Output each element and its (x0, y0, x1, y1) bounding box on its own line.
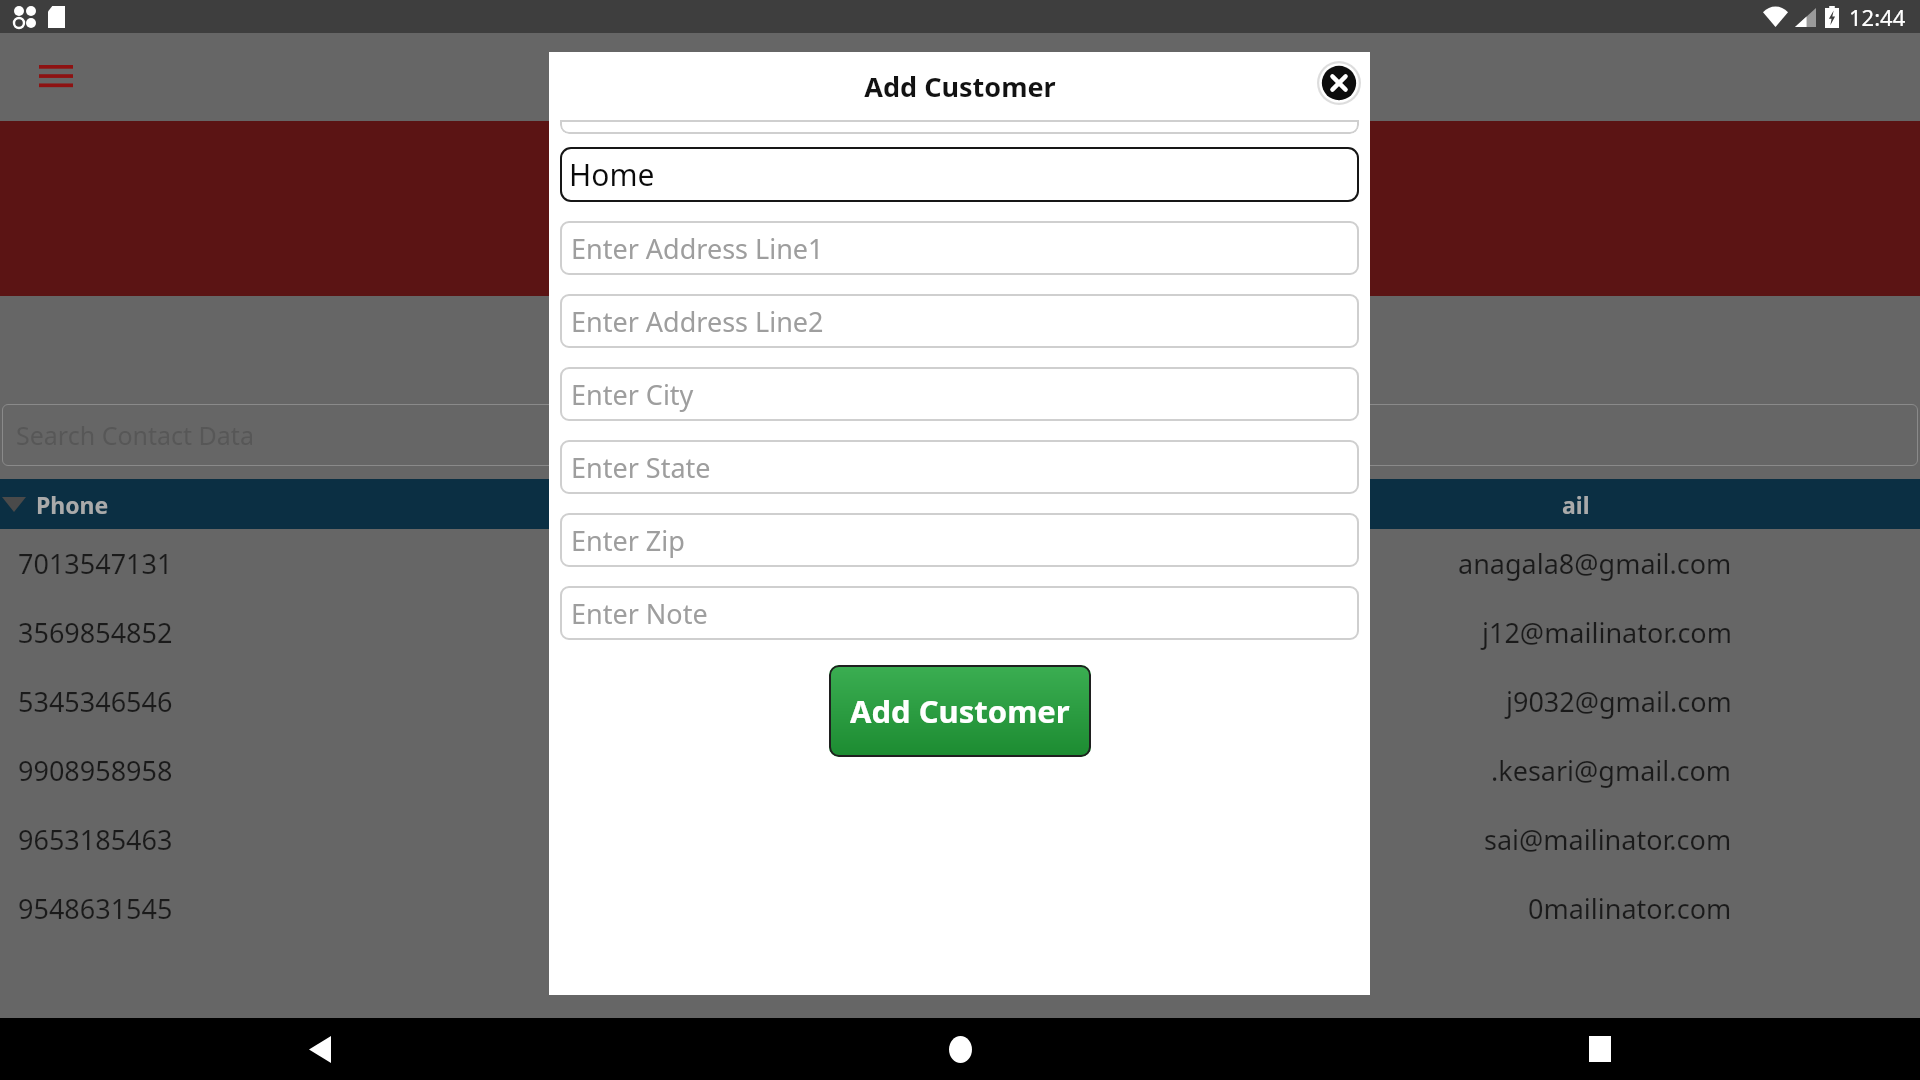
staticText: j12@mailinator.com (1482, 614, 1732, 651)
staticText: Home (569, 154, 655, 195)
staticText: 5345346546 (18, 683, 173, 720)
staticText: 0mailinator.com (1528, 890, 1732, 927)
staticText: Add Customer (850, 690, 1070, 732)
button[interactable]: Enter State (560, 440, 1359, 494)
button[interactable]: Menu (30, 51, 82, 103)
button[interactable]: Add Customer (829, 665, 1091, 757)
staticText: 3569854852 (18, 614, 173, 651)
staticText: Add Customer (864, 68, 1056, 105)
staticText: .kesari@gmail.com (1491, 752, 1732, 789)
staticText: 12:44 (1849, 2, 1906, 32)
staticText: Enter City (571, 376, 694, 413)
button[interactable]: Enter City (560, 367, 1359, 421)
button[interactable]: 9548631545 (0, 874, 1920, 943)
button[interactable]: Enter Zip (560, 513, 1359, 567)
staticText: 9548631545 (18, 890, 173, 927)
button[interactable]: 7013547131 (0, 529, 1920, 598)
staticText: ail (1562, 489, 1590, 520)
button[interactable]: 5345346546 (0, 667, 1920, 736)
staticText: 9908958958 (18, 752, 173, 789)
staticText: Enter Zip (571, 522, 685, 559)
button[interactable]: Enter Note (560, 586, 1359, 640)
button[interactable]: Enter Address Line1 (560, 221, 1359, 275)
staticText: anagala8@gmail.com (1458, 545, 1732, 582)
staticText: sai@mailinator.com (1484, 821, 1732, 858)
button[interactable]: 9908958958 (0, 736, 1920, 805)
button[interactable]: 9653185463 (0, 805, 1920, 874)
staticText: Enter State (571, 449, 711, 486)
staticText: Enter Address Line2 (571, 303, 824, 340)
button[interactable]: 3569854852 (0, 598, 1920, 667)
button[interactable]: Recent apps (1280, 1018, 1920, 1080)
button[interactable]: Back (0, 1018, 640, 1080)
staticText: Phone (36, 489, 109, 520)
button[interactable]: Search Contact Data (2, 404, 1918, 466)
staticText: 9653185463 (18, 821, 173, 858)
button[interactable]: Home (640, 1018, 1280, 1080)
staticText: Enter Note (571, 595, 708, 632)
staticText: 7013547131 (18, 545, 173, 582)
staticText: j9032@gmail.com (1506, 683, 1732, 720)
button[interactable]: Enter Address Line2 (560, 294, 1359, 348)
button[interactable]: Home (560, 147, 1359, 202)
button[interactable]: Close (1316, 60, 1362, 106)
staticText: Search Contact Data (16, 418, 254, 452)
staticText: Enter Address Line1 (571, 230, 824, 267)
